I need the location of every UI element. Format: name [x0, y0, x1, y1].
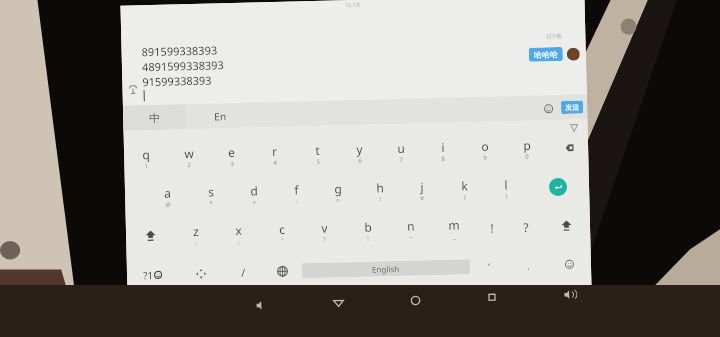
staticText: ': [488, 260, 491, 274]
button[interactable]: r: [253, 134, 297, 174]
button[interactable]: x: [217, 213, 260, 253]
staticText: 6: [358, 157, 362, 165]
button[interactable]: z: [174, 214, 217, 254]
button[interactable]: !: [474, 207, 509, 247]
staticText: !: [367, 235, 369, 243]
button[interactable]: l: [485, 168, 527, 208]
button[interactable]: Emoji: [547, 244, 591, 284]
staticText: =: [336, 196, 340, 204]
button[interactable]: v: [303, 211, 346, 251]
staticText: 已下载: [546, 33, 561, 39]
button[interactable]: y: [338, 132, 381, 172]
staticText: 8: [441, 155, 445, 163]
button[interactable]: Home: [404, 289, 426, 311]
staticText: t: [315, 142, 320, 158]
staticText: #: [420, 194, 424, 202]
button[interactable]: Cursor control: [177, 253, 224, 293]
staticText: !: [490, 220, 494, 236]
button[interactable]: Change language: [263, 251, 302, 291]
staticText: ": [281, 237, 284, 245]
button[interactable]: Voice input: [124, 81, 141, 98]
staticText: :: [195, 239, 197, 247]
button[interactable]: a: [146, 176, 190, 216]
staticText: x: [235, 222, 242, 238]
staticText: -: [296, 197, 298, 205]
button[interactable]: o: [464, 129, 506, 169]
staticText: d: [250, 182, 258, 199]
staticText: y: [356, 141, 363, 157]
button[interactable]: b: [346, 210, 389, 250]
staticText: English: [372, 263, 400, 275]
staticText: a: [164, 184, 171, 201]
button[interactable]: t: [296, 133, 339, 173]
button[interactable]: w: [167, 137, 211, 177]
button[interactable]: English: [302, 259, 470, 278]
staticText: g: [334, 180, 342, 197]
button[interactable]: s: [189, 175, 233, 215]
button[interactable]: f: [275, 173, 317, 213]
staticText: j: [420, 178, 424, 194]
staticText: /: [379, 195, 382, 203]
staticText: n: [407, 218, 415, 234]
staticText: 7: [399, 156, 403, 164]
button[interactable]: i: [422, 130, 465, 170]
button[interactable]: q: [124, 138, 168, 178]
staticText: 91599338393: [142, 72, 212, 89]
staticText: b: [364, 219, 372, 235]
button[interactable]: d: [232, 174, 276, 214]
button[interactable]: k: [443, 169, 485, 209]
staticText: h: [376, 179, 384, 195]
staticText: 4: [273, 159, 277, 167]
staticText: (: [464, 193, 466, 201]
staticText: /: [241, 265, 246, 280]
staticText: ?1: [143, 268, 154, 282]
button[interactable]: g: [317, 172, 359, 212]
staticText: 2: [187, 161, 191, 169]
staticText: 0: [525, 153, 529, 161]
button[interactable]: e: [210, 135, 254, 175]
button[interactable]: Enter: [527, 166, 589, 207]
button[interactable]: ?: [508, 206, 543, 246]
button[interactable]: 中: [123, 104, 185, 131]
button[interactable]: h: [359, 171, 401, 211]
button[interactable]: En: [185, 102, 255, 129]
button[interactable]: Recents: [481, 286, 503, 309]
button[interactable]: 发送: [561, 100, 583, 114]
staticText: f: [294, 181, 299, 197]
staticText: 9: [483, 154, 487, 162]
staticText: z: [193, 223, 199, 239]
button[interactable]: Contact avatar: [567, 47, 580, 61]
staticText: p: [523, 137, 531, 153]
button[interactable]: Back: [327, 291, 349, 314]
staticText: 891599338393: [141, 42, 218, 59]
button[interactable]: Emoji: [538, 98, 558, 119]
button[interactable]: ?1: [127, 254, 177, 295]
staticText: 5: [316, 158, 320, 166]
button[interactable]: c: [260, 212, 303, 252]
button[interactable]: j: [401, 170, 443, 210]
button[interactable]: 哈哈哈: [529, 47, 563, 62]
button[interactable]: Shift: [126, 215, 174, 256]
staticText: ~: [409, 234, 413, 242]
button[interactable]: Volume down: [250, 294, 272, 317]
staticText: 1: [144, 162, 148, 170]
staticText: _: [453, 233, 456, 241]
staticText: 发送: [565, 102, 579, 112]
button[interactable]: Shift: [542, 205, 590, 245]
staticText: +: [252, 198, 256, 207]
button[interactable]: n: [389, 209, 432, 249]
button[interactable]: Hide keyboard: [567, 121, 580, 134]
staticText: ;: [238, 238, 240, 246]
button[interactable]: Backspace: [548, 127, 588, 167]
staticText: 16:18: [344, 1, 361, 9]
staticText: w: [184, 145, 194, 161]
button[interactable]: Volume up: [557, 283, 580, 306]
button[interactable]: u: [380, 131, 423, 171]
button[interactable]: ': [469, 246, 509, 286]
staticText: u: [397, 140, 405, 156]
button[interactable]: p: [506, 128, 548, 168]
button[interactable]: /: [224, 252, 263, 292]
staticText: q: [142, 146, 150, 162]
button[interactable]: m: [432, 208, 475, 248]
